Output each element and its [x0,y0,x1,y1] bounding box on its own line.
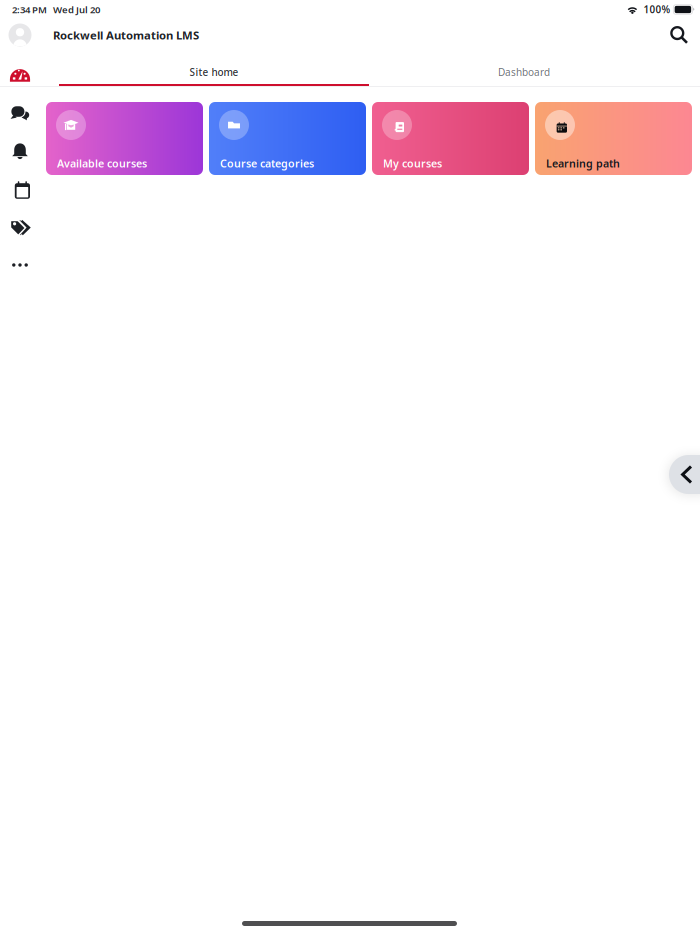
button[interactable]: Learning path [535,102,692,175]
button[interactable]: Dashboard [1,56,39,94]
staticText: Rockwell Automation LMS [53,27,199,43]
staticText: Site home [189,65,238,79]
button[interactable]: Messages [1,94,39,132]
button[interactable]: More [1,246,39,284]
staticText: Wed Jul 20 [53,3,100,16]
button[interactable]: My courses [372,102,529,175]
staticText: Learning path [546,156,620,170]
button[interactable]: Notifications [1,132,39,170]
button[interactable]: Tags [1,208,39,246]
button[interactable]: Site home [59,57,369,87]
staticText: Available courses [57,156,147,170]
button[interactable]: Search [662,20,696,50]
staticText: Dashboard [498,65,550,79]
button[interactable]: Profile [0,20,40,50]
staticText: Course categories [220,156,314,170]
button[interactable]: Dashboard [369,57,679,87]
staticText: My courses [383,156,442,170]
staticText: 2:34 PM [12,3,47,16]
button[interactable]: Available courses [46,102,203,175]
button[interactable]: Course categories [209,102,366,175]
button[interactable]: Calendar [1,170,39,208]
button[interactable]: Open navigation drawer [669,455,700,494]
staticText: 100% [643,3,670,16]
